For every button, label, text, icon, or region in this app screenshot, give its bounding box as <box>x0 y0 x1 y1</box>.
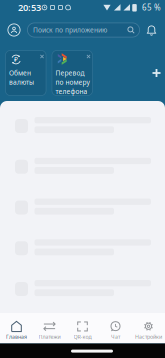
button[interactable]: Поиск <box>27 22 140 37</box>
staticText: телефона <box>55 87 87 96</box>
button[interactable]: Скрыть <box>84 52 92 60</box>
button[interactable]: Платежи <box>33 313 66 343</box>
staticText: Главная <box>6 333 27 340</box>
staticText: 65 % <box>142 2 161 13</box>
button[interactable]: QR-код <box>66 313 99 343</box>
button[interactable]: ₽ <box>5 50 46 96</box>
staticText: Настройки <box>135 333 162 340</box>
staticText: 20:53 <box>18 1 41 14</box>
button[interactable]: Перевод <box>51 50 93 96</box>
button[interactable]: Добавить <box>149 65 164 80</box>
staticText: по номеру <box>55 78 89 87</box>
staticText: ₽ <box>14 55 18 64</box>
button[interactable]: Скрыть <box>38 52 46 60</box>
button[interactable]: Главная <box>0 313 33 343</box>
staticText: Чат <box>111 333 120 340</box>
staticText: валюты <box>9 78 34 87</box>
staticText: Обмен <box>9 69 31 77</box>
staticText: QR-код <box>73 333 91 340</box>
button[interactable]: Профиль <box>7 23 20 36</box>
button[interactable]: Чат <box>99 313 132 343</box>
button[interactable]: Уведомления <box>146 24 156 35</box>
staticText: Поиск по приложению <box>33 26 107 34</box>
staticText: Перевод <box>55 69 84 77</box>
button[interactable]: Настройки <box>132 313 165 343</box>
staticText: Платежи <box>38 333 60 340</box>
